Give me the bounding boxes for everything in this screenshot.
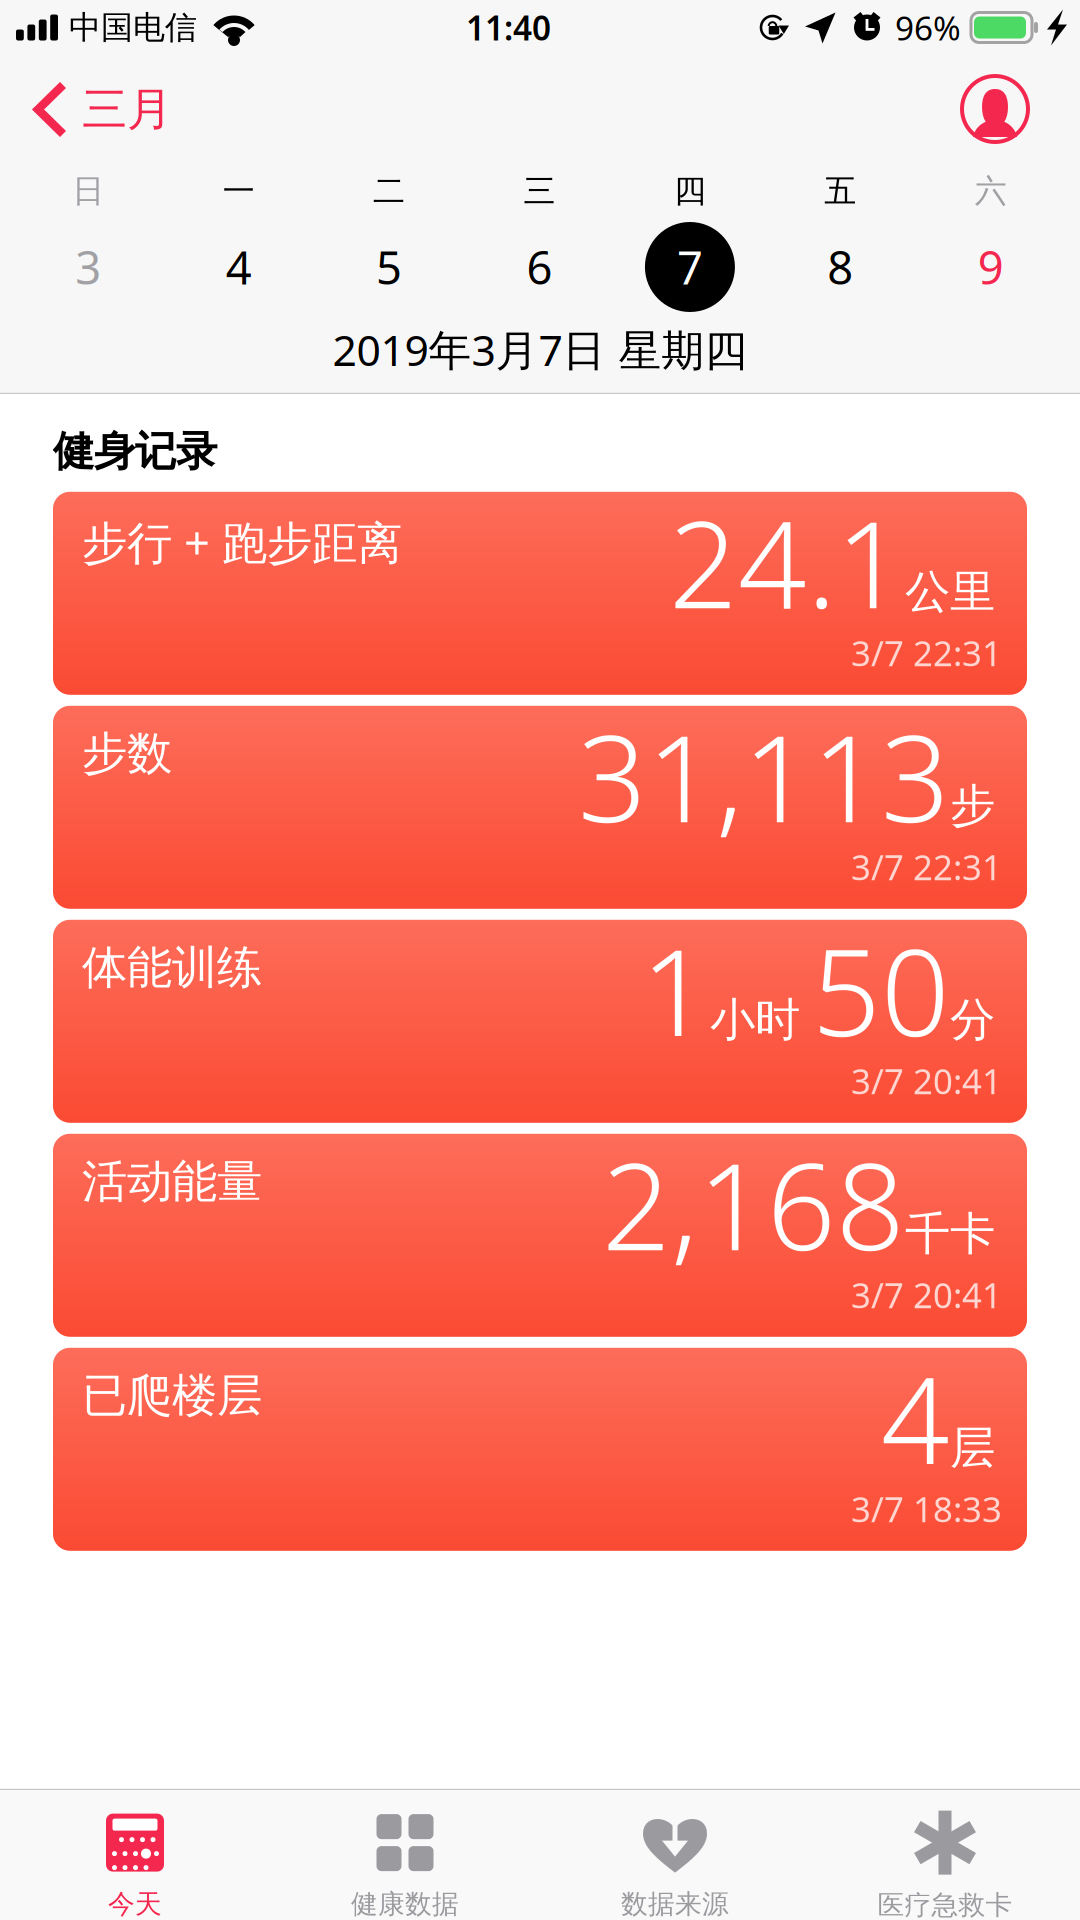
- staticText: 96%: [895, 5, 961, 50]
- staticText: 中国电信: [69, 8, 197, 47]
- staticText: 六: [975, 171, 1007, 211]
- button[interactable]: 三月: [0, 60, 182, 150]
- staticText: 31,113: [578, 696, 950, 855]
- button[interactable]: 六: [916, 150, 1066, 320]
- staticText: 一: [223, 171, 255, 211]
- button[interactable]: 2,168: [53, 1134, 1027, 1337]
- staticText: 1: [641, 910, 710, 1069]
- button[interactable]: 31,113: [53, 706, 1027, 909]
- button[interactable]: 个人资料: [961, 60, 1080, 150]
- button[interactable]: 1: [53, 920, 1027, 1123]
- staticText: 数据来源: [621, 1888, 729, 1920]
- staticText: 4: [881, 1338, 950, 1497]
- staticText: 9: [978, 237, 1004, 297]
- button[interactable]: 五: [765, 150, 915, 320]
- staticText: 医疗急救卡: [877, 1889, 1012, 1920]
- staticText: 步数: [82, 726, 172, 781]
- staticText: 日: [72, 171, 104, 211]
- staticText: 体能训练: [82, 940, 262, 995]
- button[interactable]: 健康数据: [270, 1790, 540, 1920]
- button[interactable]: 医疗急救卡: [810, 1790, 1080, 1920]
- staticText: 3/7 20:41: [851, 1058, 1002, 1104]
- button[interactable]: 数据来源: [540, 1790, 810, 1920]
- staticText: 千卡: [905, 1206, 995, 1262]
- staticText: 今天: [108, 1888, 162, 1920]
- staticText: 8: [827, 237, 853, 297]
- staticText: 11:40: [466, 5, 551, 50]
- staticText: 公里: [905, 564, 995, 620]
- staticText: 4: [226, 237, 252, 297]
- staticText: 6: [526, 237, 552, 297]
- staticText: 分: [950, 992, 995, 1048]
- staticText: 步: [950, 778, 995, 834]
- staticText: 层: [950, 1420, 995, 1476]
- staticText: 2,168: [602, 1124, 905, 1283]
- staticText: 步行 + 跑步距离: [82, 512, 402, 572]
- staticText: 二: [373, 171, 405, 211]
- staticText: 2019年3月7日 星期四: [332, 321, 747, 378]
- staticText: 24.1: [669, 482, 905, 641]
- button[interactable]: 四: [615, 150, 765, 320]
- staticText: 3/7 20:41: [851, 1272, 1002, 1318]
- staticText: 五: [824, 171, 856, 211]
- staticText: 四: [674, 171, 706, 211]
- staticText: 50: [812, 910, 950, 1069]
- button[interactable]: 二: [314, 150, 464, 320]
- staticText: 3/7 22:31: [851, 630, 1002, 676]
- staticText: 7: [677, 237, 703, 297]
- button[interactable]: 24.1: [53, 492, 1027, 695]
- button[interactable]: 今天: [0, 1790, 270, 1920]
- staticText: 健身记录: [53, 426, 217, 477]
- staticText: 三月: [82, 82, 172, 137]
- staticText: 小时: [710, 992, 800, 1048]
- button[interactable]: 4: [53, 1348, 1027, 1551]
- button[interactable]: 三: [464, 150, 615, 320]
- staticText: 已爬楼层: [82, 1368, 262, 1423]
- staticText: 3/7 22:31: [851, 844, 1002, 890]
- staticText: 5: [376, 237, 402, 297]
- button[interactable]: 一: [163, 150, 314, 320]
- staticText: 三: [523, 171, 555, 211]
- button[interactable]: 日: [13, 150, 163, 320]
- staticText: 3/7 18:33: [851, 1486, 1002, 1532]
- staticText: 3: [75, 237, 101, 297]
- staticText: 活动能量: [82, 1154, 262, 1209]
- staticText: 健康数据: [351, 1888, 459, 1920]
